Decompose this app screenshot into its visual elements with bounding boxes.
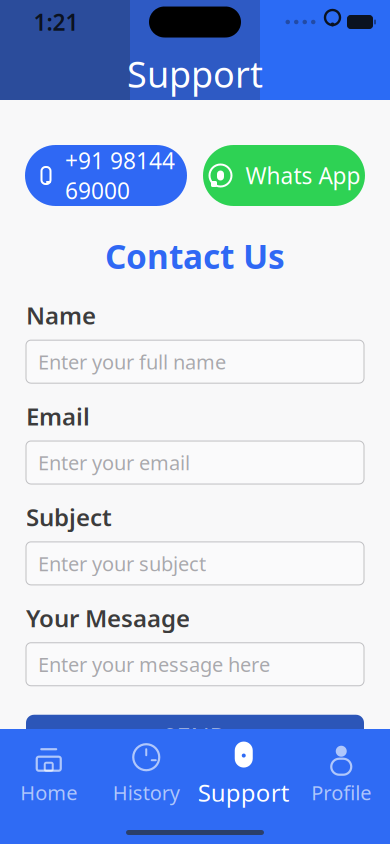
button[interactable]: Support: [195, 743, 292, 805]
staticText: Whats App: [245, 160, 360, 190]
staticText: Enter your message here: [38, 651, 270, 678]
button[interactable]: Profile: [292, 743, 390, 805]
button[interactable]: History: [97, 743, 195, 805]
staticText: Enter your subject: [38, 550, 206, 577]
staticText: Your Mesaage: [26, 602, 190, 634]
staticText: 1:21: [33, 7, 78, 37]
staticText: Support: [127, 50, 263, 98]
staticText: Enter your full name: [38, 348, 226, 375]
button[interactable]: Whats App: [203, 145, 365, 206]
staticText: +91 98144 69000: [65, 145, 175, 206]
staticText: History: [113, 779, 180, 806]
staticText: Support: [198, 777, 290, 808]
staticText: Contact Us: [105, 234, 285, 278]
button[interactable]: Home: [0, 743, 97, 805]
staticText: SEND: [162, 720, 227, 753]
staticText: Subject: [26, 501, 112, 533]
button[interactable]: SEND: [26, 715, 364, 759]
staticText: Email: [26, 400, 90, 432]
button[interactable]: +91 98144 69000: [25, 145, 187, 206]
staticText: Profile: [311, 779, 371, 806]
staticText: Name: [26, 299, 96, 331]
staticText: Home: [20, 779, 77, 806]
staticText: Enter your email: [38, 449, 190, 476]
